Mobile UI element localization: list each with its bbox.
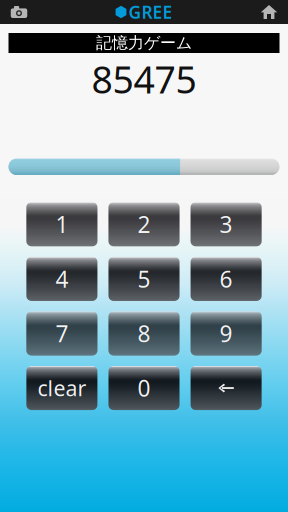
- button[interactable]: 2: [108, 202, 179, 246]
- button[interactable]: 6: [191, 257, 262, 301]
- staticText: 記憶力ゲーム: [96, 33, 192, 53]
- staticText: 8: [137, 318, 150, 348]
- staticText: 1: [55, 209, 68, 239]
- staticText: 0: [137, 373, 150, 403]
- staticText: 4: [55, 264, 68, 294]
- button[interactable]: clear: [26, 366, 97, 410]
- button[interactable]: Home: [250, 0, 288, 24]
- button[interactable]: 7: [26, 312, 97, 355]
- staticText: 9: [220, 318, 233, 348]
- button[interactable]: Camera: [0, 0, 38, 24]
- button[interactable]: Backspace: [191, 366, 262, 410]
- button[interactable]: 5: [108, 257, 179, 301]
- button[interactable]: 3: [191, 202, 262, 246]
- staticText: 6: [220, 264, 233, 294]
- staticText: clear: [37, 374, 86, 402]
- button[interactable]: 0: [108, 366, 179, 410]
- staticText: 2: [137, 209, 150, 239]
- button[interactable]: 9: [191, 312, 262, 355]
- staticText: 3: [220, 209, 233, 239]
- staticText: 5: [137, 264, 150, 294]
- button[interactable]: 4: [26, 257, 97, 301]
- staticText: 7: [55, 318, 68, 348]
- staticText: GREE: [128, 0, 172, 23]
- staticText: 85475: [91, 54, 196, 104]
- button[interactable]: 1: [26, 202, 97, 246]
- button[interactable]: 8: [108, 312, 179, 355]
